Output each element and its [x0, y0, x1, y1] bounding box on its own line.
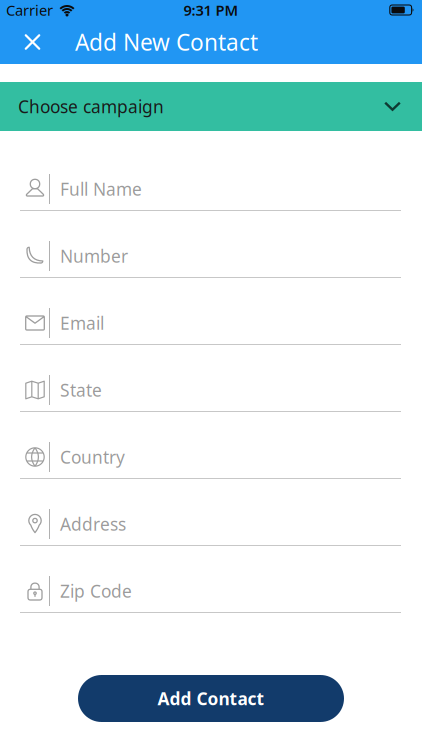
- button[interactable]: Full Name: [0, 144, 422, 211]
- staticText: State: [60, 378, 102, 401]
- staticText: Number: [60, 244, 128, 267]
- button[interactable]: Zip Code: [0, 546, 422, 613]
- button[interactable]: [25, 34, 40, 49]
- button[interactable]: Number: [0, 211, 422, 278]
- button[interactable]: Email: [0, 278, 422, 345]
- button[interactable]: Address: [0, 479, 422, 546]
- staticText: Country: [60, 445, 125, 468]
- staticText: Add New Contact: [75, 27, 258, 57]
- button[interactable]: Choose campaign: [0, 82, 422, 131]
- staticText: Address: [60, 512, 126, 535]
- staticText: Carrier: [6, 0, 53, 20]
- button[interactable]: Add Contact: [78, 675, 344, 722]
- staticText: Add Contact: [157, 687, 264, 710]
- button[interactable]: Country: [0, 412, 422, 479]
- button[interactable]: State: [0, 345, 422, 412]
- staticText: 9:31 PM: [183, 0, 238, 20]
- staticText: Zip Code: [60, 579, 132, 602]
- staticText: Email: [60, 311, 104, 334]
- staticText: Full Name: [60, 177, 142, 200]
- staticText: Choose campaign: [18, 95, 164, 118]
